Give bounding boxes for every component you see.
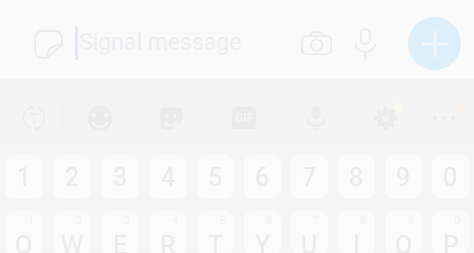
staticText: E [113,231,128,253]
staticText: 7 [302,163,317,192]
button[interactable]: 0 [432,211,469,253]
button[interactable]: 8 [338,211,375,253]
button[interactable]: 4 [149,211,187,253]
button[interactable]: Voice message [347,25,383,61]
staticText: 3 [124,214,131,227]
staticText: 8 [360,214,367,227]
button[interactable]: Emoji kitchen [153,100,189,136]
button[interactable]: 0 [432,155,469,199]
button[interactable]: 3 [101,211,139,253]
button[interactable]: 2 [53,211,91,253]
button[interactable]: Voice input [298,100,334,136]
button[interactable]: Camera [298,25,334,61]
staticText: P [443,231,459,253]
button[interactable]: Settings [367,100,403,136]
button[interactable]: 3 [101,155,139,199]
staticText: GIF [235,111,254,125]
button[interactable]: 9 [385,211,422,253]
staticText: 9 [407,214,414,227]
staticText: 6 [255,163,270,192]
button[interactable]: 7 [291,155,328,199]
button[interactable]: 1 [5,155,43,199]
button[interactable]: 5 [197,211,234,253]
staticText: I [353,231,360,253]
button[interactable]: 6 [244,211,281,253]
staticText: 8 [349,163,364,192]
staticText: 3 [113,163,128,192]
button[interactable]: 2 [53,155,91,199]
staticText: U [301,231,318,253]
button[interactable]: 9 [385,155,422,199]
staticText: Y [255,231,271,253]
button[interactable]: 8 [338,155,375,199]
button[interactable]: Add attachment [408,17,461,70]
staticText: 1 [28,214,35,227]
button[interactable]: 1 [5,211,43,253]
staticText: 6 [266,214,273,227]
staticText: Signal message [79,29,242,56]
staticText: 4 [172,214,179,227]
button[interactable]: 6 [244,155,281,199]
staticText: O [395,231,413,253]
button[interactable]: GIF [226,100,262,136]
button[interactable]: Emoji [82,100,118,136]
staticText: 2 [65,163,80,192]
staticText: 0 [454,214,461,227]
button[interactable]: 7 [291,211,328,253]
staticText: 9 [396,163,411,192]
staticText: Q [15,231,33,253]
staticText: 7 [313,214,320,227]
staticText: 0 [443,163,458,192]
staticText: T [208,231,223,253]
button[interactable]: 4 [149,155,187,199]
staticText: W [61,231,84,253]
staticText: 4 [161,163,176,192]
staticText: 2 [76,214,83,227]
staticText: 5 [219,214,226,227]
button[interactable]: Stickers [30,26,66,62]
staticText: R [160,231,176,253]
staticText: 5 [208,163,223,192]
staticText: 1 [17,163,32,192]
button[interactable]: 5 [197,155,234,199]
